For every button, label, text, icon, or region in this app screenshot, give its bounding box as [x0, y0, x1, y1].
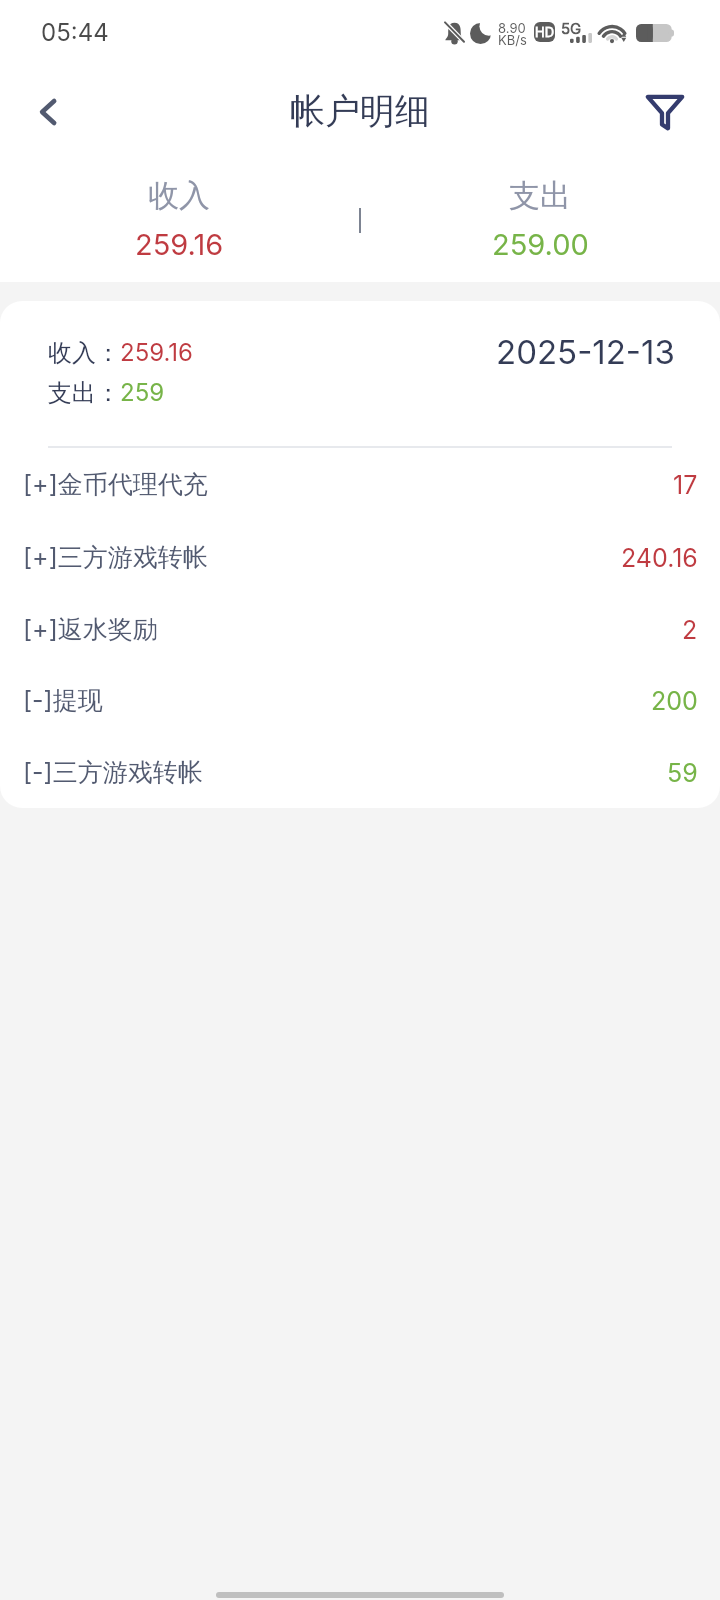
staticText: 259.16 — [135, 227, 224, 262]
staticText: [+]返水奖励 — [23, 614, 158, 646]
button[interactable]: [+]三方游戏转帐 — [0, 522, 720, 594]
staticText: 收入： — [48, 338, 120, 368]
staticText: [+]金币代理代充 — [23, 469, 208, 501]
button[interactable]: [+]金币代理代充 — [0, 447, 720, 522]
staticText: 2025-12-13 — [496, 332, 675, 372]
staticText: [-]提现 — [23, 685, 103, 717]
staticText: 8.90 — [498, 20, 526, 36]
staticText: [-]三方游戏转帐 — [23, 757, 203, 789]
staticText: [+]三方游戏转帐 — [23, 542, 208, 574]
staticText: 200 — [651, 686, 698, 716]
staticText: 240.16 — [621, 543, 698, 573]
button[interactable]: [+]返水奖励 — [0, 594, 720, 665]
button[interactable]: Filter — [629, 76, 701, 148]
staticText: 2 — [682, 615, 698, 645]
staticText: 05:44 — [41, 18, 109, 47]
staticText: 支出 — [509, 176, 571, 215]
staticText: 259 — [120, 378, 165, 407]
staticText: 259.16 — [120, 338, 193, 367]
staticText: 收入 — [148, 176, 210, 215]
staticText: HD — [535, 24, 555, 40]
staticText: 帐户明细 — [0, 89, 720, 133]
staticText: 支出： — [48, 378, 120, 408]
staticText: 5G — [561, 19, 582, 37]
staticText: KB/s — [498, 32, 527, 48]
button[interactable]: [-]三方游戏转帐 — [0, 737, 720, 808]
staticText: 17 — [673, 470, 698, 500]
button[interactable]: Back — [12, 76, 84, 148]
staticText: 259.00 — [492, 227, 589, 262]
button[interactable]: [-]提现 — [0, 665, 720, 737]
staticText: 59 — [667, 758, 698, 788]
